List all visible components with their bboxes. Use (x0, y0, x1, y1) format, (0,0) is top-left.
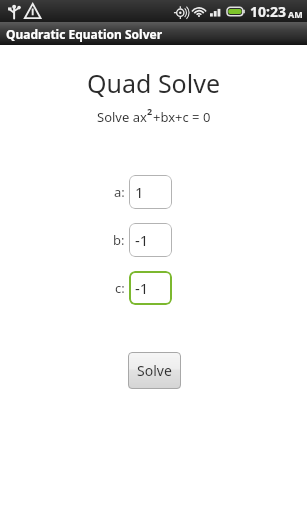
staticText: 10:23 (250, 2, 286, 21)
staticText: c: (115, 279, 125, 297)
staticText: -1 (135, 230, 149, 250)
staticText: b: (113, 231, 125, 249)
staticText: Solve (137, 361, 172, 380)
staticText: AM (288, 8, 303, 20)
button[interactable]: 1 (129, 175, 172, 209)
staticText: Quad Solve (87, 66, 220, 100)
staticText: 1 (135, 182, 144, 202)
staticText: Solve ax (97, 108, 147, 126)
button[interactable]: -1 (129, 271, 172, 305)
button[interactable]: -1 (129, 223, 172, 257)
staticText: -1 (135, 278, 149, 298)
button[interactable]: Solve (128, 352, 181, 389)
staticText: Quadratic Equation Solver (6, 26, 163, 42)
staticText: +bx+c = 0 (153, 108, 211, 126)
staticText: 2 (147, 105, 153, 117)
staticText: a: (114, 183, 125, 201)
